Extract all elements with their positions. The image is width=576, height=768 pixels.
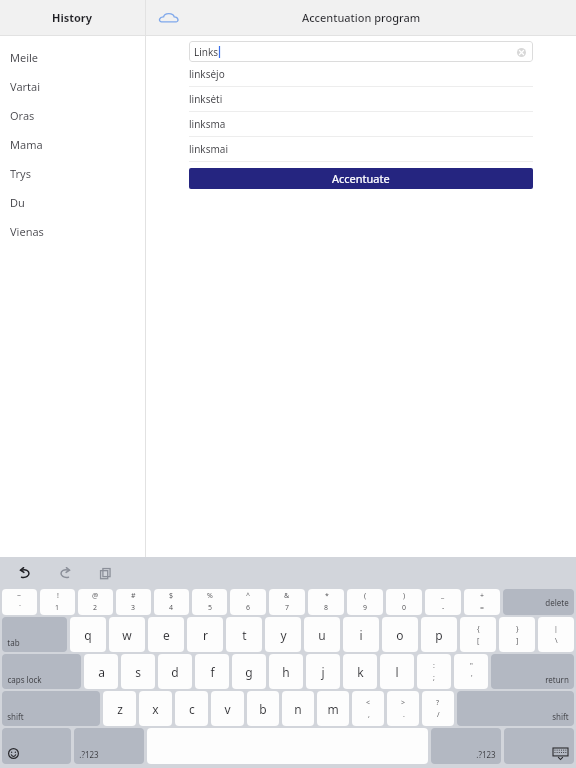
button[interactable]: caps lock (2, 654, 81, 689)
button[interactable]: b (247, 691, 279, 726)
button[interactable]: shift (2, 691, 100, 726)
button[interactable]: # (116, 589, 151, 615)
button[interactable]: { (460, 617, 496, 652)
button[interactable]: ^ (230, 589, 266, 615)
staticText: n (294, 701, 302, 717)
staticText: Vartai (10, 79, 41, 94)
button[interactable]: u (304, 617, 340, 652)
button[interactable]: $ (154, 589, 189, 615)
button[interactable]: ! (40, 589, 75, 615)
staticText: ! (57, 591, 59, 601)
button[interactable]: ) (386, 589, 422, 615)
button[interactable]: Vienas (0, 217, 145, 246)
button[interactable]: Undo (12, 560, 38, 586)
button[interactable]: > (387, 691, 419, 726)
button[interactable]: " (454, 654, 488, 689)
button[interactable]: e (148, 617, 184, 652)
staticText: shift (7, 711, 24, 722)
staticText: ; (433, 673, 435, 683)
staticText: & (284, 591, 290, 601)
button[interactable]: y (265, 617, 301, 652)
button[interactable]: @ (78, 589, 113, 615)
button[interactable]: k (343, 654, 377, 689)
staticText: .?123 (476, 749, 496, 760)
button[interactable]: return (491, 654, 574, 689)
button[interactable]: a (84, 654, 118, 689)
button[interactable]: Oras (0, 101, 145, 130)
staticText: a (98, 664, 105, 680)
button[interactable]: : (417, 654, 451, 689)
button[interactable]: v (211, 691, 244, 726)
button[interactable]: x (139, 691, 172, 726)
button[interactable]: p (421, 617, 457, 652)
button[interactable]: Vartai (0, 72, 145, 101)
button[interactable]: c (175, 691, 208, 726)
staticText: < (366, 698, 371, 708)
button[interactable]: o (382, 617, 418, 652)
button[interactable]: ( (347, 589, 383, 615)
button[interactable]: Du (0, 188, 145, 217)
staticText: Trys (10, 166, 31, 181)
button[interactable]: n (282, 691, 314, 726)
button[interactable]: shift (457, 691, 574, 726)
button[interactable]: s (121, 654, 155, 689)
button[interactable]: delete (503, 589, 574, 615)
button[interactable]: f (195, 654, 229, 689)
button[interactable]: h (269, 654, 303, 689)
button[interactable]: Mama (0, 130, 145, 159)
button[interactable]: g (232, 654, 266, 689)
button[interactable]: tab (2, 617, 67, 652)
button[interactable]: Accentuate (189, 168, 533, 189)
button[interactable]: z (103, 691, 136, 726)
staticText: x (152, 701, 159, 717)
button[interactable]: m (317, 691, 349, 726)
staticText: o (396, 627, 404, 643)
button[interactable]: l (380, 654, 414, 689)
button[interactable]: linksėti (189, 87, 533, 111)
button[interactable]: Clear text (514, 45, 528, 59)
button[interactable]: Trys (0, 159, 145, 188)
button[interactable]: t (226, 617, 262, 652)
staticText: ^ (246, 591, 251, 601)
staticText: return (545, 674, 569, 685)
staticText: 9 (363, 603, 368, 613)
button[interactable]: } (499, 617, 535, 652)
staticText: linksma (189, 117, 226, 131)
button[interactable]: < (352, 691, 384, 726)
staticText: Accentuation program (302, 10, 421, 25)
button[interactable]: & (269, 589, 305, 615)
staticText: ` (19, 603, 21, 613)
button[interactable]: Links (189, 41, 533, 62)
staticText: Oras (10, 108, 35, 123)
button[interactable]: + (464, 589, 500, 615)
button[interactable]: Redo (52, 560, 78, 586)
button[interactable]: ? (422, 691, 454, 726)
button[interactable]: Paste (92, 560, 118, 586)
button[interactable]: % (192, 589, 227, 615)
button[interactable]: linksmai (189, 137, 533, 161)
button[interactable]: | (538, 617, 574, 652)
button[interactable]: w (109, 617, 145, 652)
button[interactable]: .?123 (74, 728, 144, 764)
button[interactable]: Hide keyboard (504, 728, 574, 764)
button[interactable]: linksėjo (189, 62, 533, 86)
staticText: 5 (208, 603, 213, 613)
button[interactable]: Cloud sync (152, 1, 186, 35)
staticText: - (442, 603, 445, 613)
staticText: 3 (131, 603, 136, 613)
button[interactable]: .?123 (431, 728, 501, 764)
staticText: ~ (17, 591, 22, 601)
button[interactable]: d (158, 654, 192, 689)
staticText: f (210, 664, 215, 680)
button[interactable]: j (306, 654, 340, 689)
button[interactable]: _ (425, 589, 461, 615)
button[interactable]: q (70, 617, 106, 652)
button[interactable]: * (308, 589, 344, 615)
button[interactable]: Emoji (2, 728, 71, 764)
button[interactable]: r (187, 617, 223, 652)
button[interactable]: ~ (2, 589, 37, 615)
button[interactable]: i (343, 617, 379, 652)
button[interactable]: Meile (0, 43, 145, 72)
button[interactable]: linksma (189, 112, 533, 136)
